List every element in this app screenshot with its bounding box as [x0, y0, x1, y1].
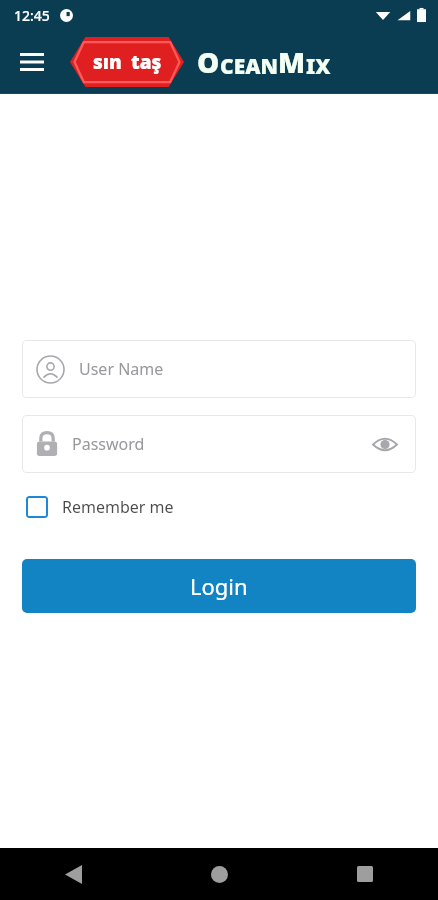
button[interactable]: Remember me [22, 492, 178, 522]
staticText: 12:45 [14, 6, 50, 25]
button[interactable]: Password [22, 415, 416, 473]
staticText: IX [306, 52, 331, 81]
staticText: Password [72, 433, 145, 455]
staticText: sın [93, 49, 122, 75]
staticText: CEAN [220, 52, 278, 81]
staticText: M [278, 43, 306, 81]
staticText: Login [190, 571, 248, 601]
button[interactable]: Back [0, 848, 146, 900]
button[interactable]: Home [146, 848, 292, 900]
staticText: taş [131, 49, 162, 75]
button[interactable]: User Name [22, 340, 416, 398]
staticText: User Name [79, 358, 164, 380]
button[interactable]: Open navigation menu [12, 42, 52, 82]
button[interactable]: Recent apps [292, 848, 438, 900]
button[interactable]: Login [22, 559, 416, 613]
staticText: O [197, 43, 220, 81]
staticText: Remember me [62, 496, 174, 518]
button[interactable]: Show password [368, 427, 402, 461]
